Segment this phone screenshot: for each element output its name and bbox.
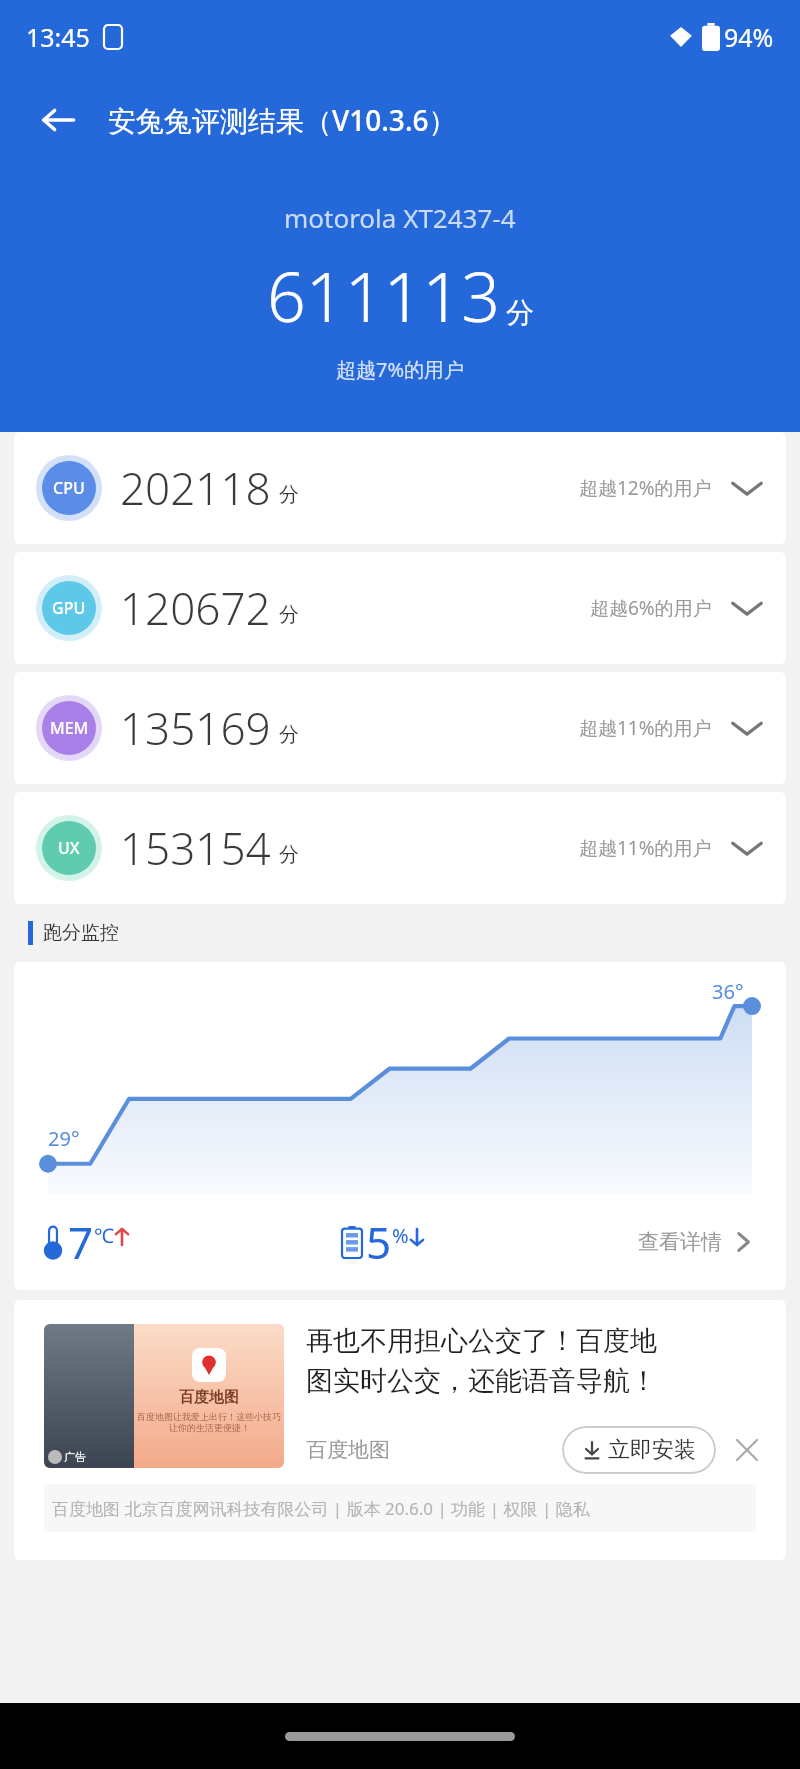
staticText: 百度地图让我爱上出行！这些小技巧 (137, 1411, 281, 1422)
button[interactable]: CPU (14, 432, 786, 544)
button[interactable]: GPU (14, 552, 786, 664)
staticText: 36° (712, 978, 744, 1005)
staticText: 94% (724, 20, 774, 54)
staticText: motorola XT2437-4 (284, 200, 516, 235)
staticText: MEM (50, 717, 89, 739)
button[interactable]: Back (30, 92, 86, 148)
staticText: 分 (506, 295, 534, 330)
staticText: 立即安装 (608, 1436, 696, 1464)
staticText: 分 (279, 722, 299, 747)
staticText: 13:45 (26, 20, 90, 54)
staticText: 29° (48, 1125, 80, 1152)
staticText: 超越6%的用户 (590, 595, 712, 621)
staticText: 153154 (120, 818, 271, 878)
staticText: % (392, 1222, 409, 1249)
staticText: ℃ (94, 1222, 114, 1249)
staticText: CPU (53, 477, 85, 499)
staticText: 202118 (120, 458, 271, 518)
staticText: 120672 (120, 578, 271, 638)
button[interactable]: Close ad (730, 1433, 764, 1467)
button[interactable]: 立即安装 (562, 1426, 716, 1474)
staticText: 611113 (267, 249, 500, 342)
button[interactable]: 百度地图 (14, 1300, 786, 1560)
staticText: 超越7%的用户 (336, 356, 465, 383)
staticText: UX (58, 837, 80, 859)
staticText: 广告 (64, 1450, 86, 1464)
staticText: 跑分监控 (43, 921, 119, 945)
staticText: 查看详情 (638, 1229, 722, 1255)
staticText: 超越11%的用户 (579, 715, 712, 741)
staticText: 分 (279, 602, 299, 627)
staticText: 5 (366, 1212, 392, 1272)
button[interactable]: UX (14, 792, 786, 904)
button[interactable]: 查看详情 (638, 1227, 758, 1257)
staticText: 再也不用担心公交了！百度地 (306, 1324, 657, 1358)
staticText: 分 (279, 842, 299, 867)
staticText: GPU (52, 597, 86, 619)
staticText: 图实时公交，还能语音导航！ (306, 1364, 657, 1398)
staticText: 让你的生活更便捷！ (169, 1422, 250, 1433)
staticText: 百度地图 (179, 1388, 239, 1407)
staticText: 分 (279, 482, 299, 507)
button[interactable]: MEM (14, 672, 786, 784)
staticText: 超越12%的用户 (579, 475, 712, 501)
staticText: 7 (68, 1212, 94, 1272)
staticText: 百度地图 (306, 1437, 390, 1463)
staticText: 安兔兔评测结果（V10.3.6） (108, 101, 457, 139)
staticText: 超越11%的用户 (579, 835, 712, 861)
staticText: 百度地图 北京百度网讯科技有限公司 | 版本 20.6.0 | 功能 | 权限 … (52, 1497, 590, 1520)
staticText: 135169 (120, 698, 271, 758)
